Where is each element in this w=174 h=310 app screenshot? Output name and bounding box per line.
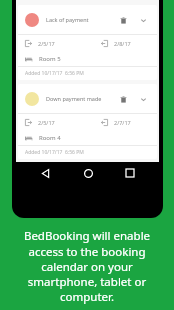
staticText: 2/5/17: [38, 119, 55, 126]
staticText: Room 5: [39, 55, 61, 63]
staticText: Lack of payment: [46, 16, 116, 23]
button[interactable]: Back: [35, 163, 55, 183]
staticText: 2/8/17: [114, 40, 131, 47]
staticText: 2/5/17: [38, 40, 55, 47]
button[interactable]: Expand: [136, 13, 150, 27]
button[interactable]: Lack of payment: [18, 5, 157, 80]
button[interactable]: Delete: [116, 92, 130, 106]
button[interactable]: Home: [78, 163, 98, 183]
staticText: 2/7/17: [114, 119, 131, 126]
staticText: Down payment made: [46, 95, 116, 102]
staticText: BedBooking will enable access to the boo…: [6, 228, 168, 304]
button[interactable]: Expand: [136, 92, 150, 106]
button[interactable]: Recent apps: [120, 163, 140, 183]
staticText: Added 10/17/17 6:56 PM: [25, 149, 84, 156]
button[interactable]: Delete: [116, 13, 130, 27]
staticText: Room 4: [39, 134, 61, 142]
staticText: Added 10/17/17 6:56 PM: [25, 70, 84, 77]
button[interactable]: Down payment made: [18, 84, 157, 159]
